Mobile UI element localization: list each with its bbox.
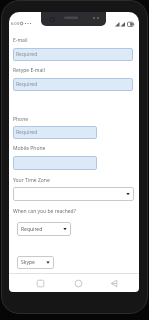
staticText: When can you be reached? <box>13 208 76 215</box>
button[interactable] <box>13 156 97 170</box>
staticText: Required <box>16 81 38 88</box>
staticText: Required <box>16 129 38 136</box>
button[interactable]: Skype <box>17 256 54 269</box>
button[interactable]: Required <box>13 48 133 61</box>
button[interactable] <box>13 187 134 201</box>
button[interactable]: Required <box>13 78 133 91</box>
staticText: Required <box>16 51 38 58</box>
button[interactable] <box>66 275 92 292</box>
staticText: E-mail <box>13 37 28 44</box>
staticText: Your Time Zone <box>13 177 50 184</box>
staticText: Skype <box>21 259 35 266</box>
staticText: 6:00 <box>11 21 19 26</box>
staticText: Phone <box>13 116 29 123</box>
staticText: Required <box>21 226 43 233</box>
button[interactable] <box>27 275 53 292</box>
button[interactable] <box>101 275 127 292</box>
button[interactable]: Required <box>13 126 97 139</box>
button[interactable]: Required <box>17 222 71 236</box>
staticText: Mobile Phone <box>13 145 46 152</box>
staticText: Retype E-mail <box>13 67 45 74</box>
